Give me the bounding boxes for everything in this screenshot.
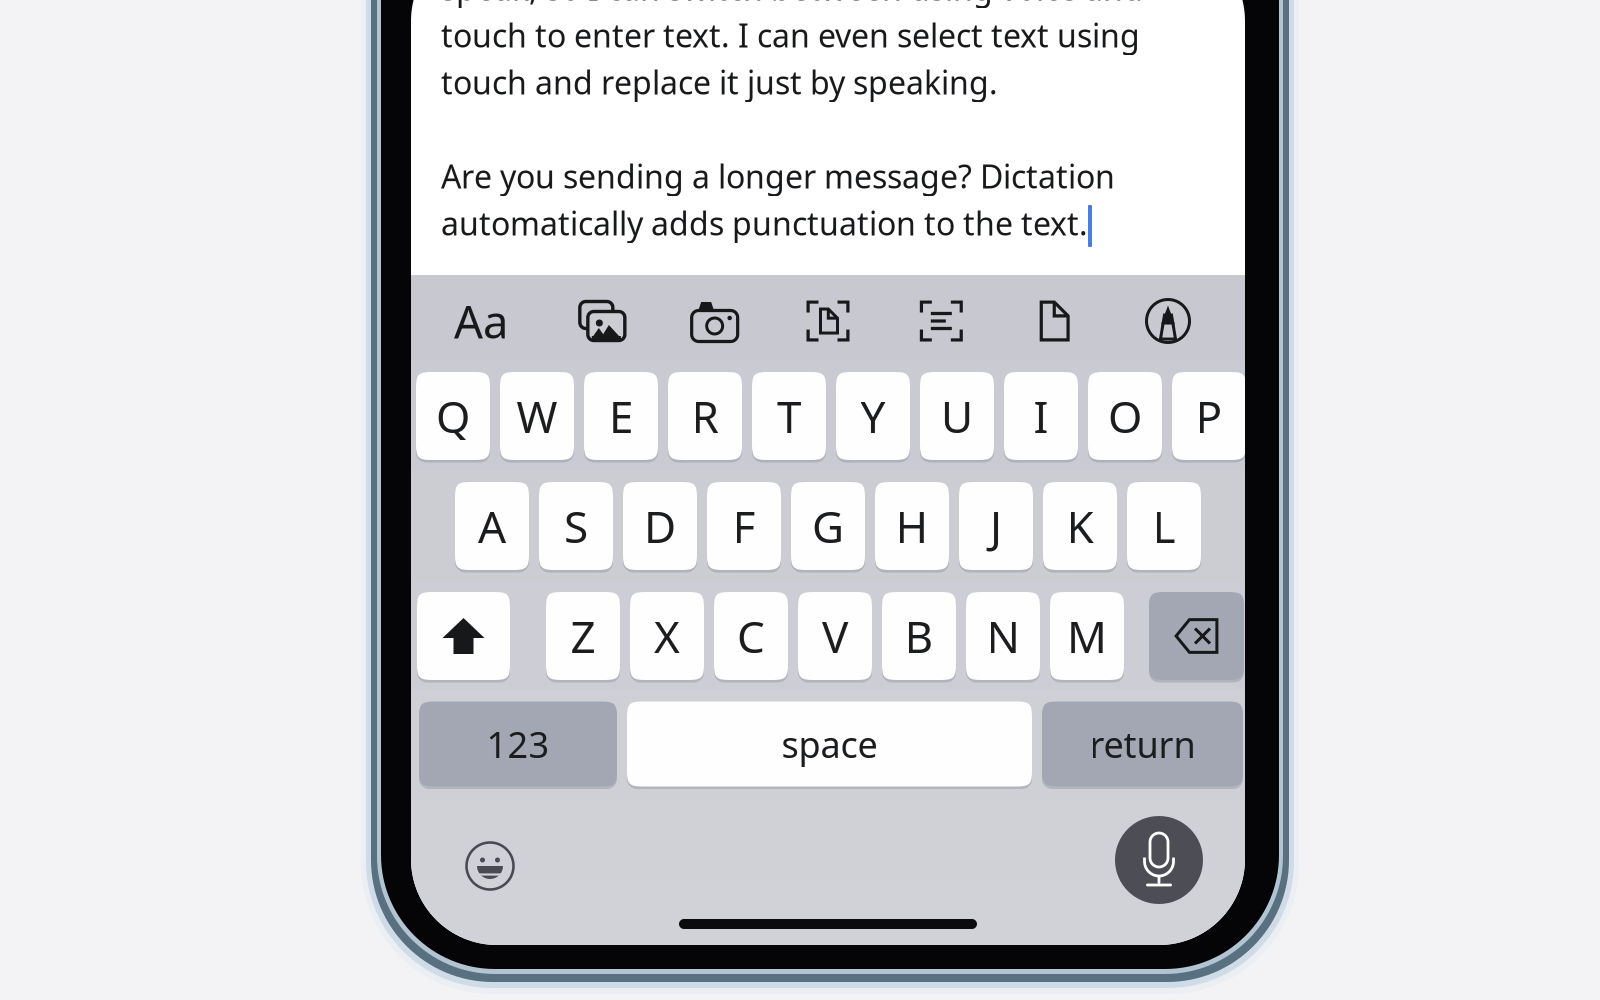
button[interactable]: Camera — [686, 296, 744, 346]
button[interactable]: R — [668, 370, 742, 461]
button[interactable]: J — [959, 480, 1033, 571]
staticText: Z — [570, 607, 595, 665]
staticText: X — [654, 607, 680, 665]
staticText: J — [990, 497, 1002, 555]
button[interactable]: Attach File — [1026, 296, 1084, 346]
button[interactable]: Delete — [1149, 590, 1244, 681]
button[interactable]: H — [875, 480, 949, 571]
staticText: touch to enter text. I can even select t… — [441, 14, 1140, 56]
button[interactable]: S — [539, 480, 613, 571]
staticText: R — [691, 387, 718, 445]
staticText: F — [732, 497, 755, 555]
staticText: Q — [436, 387, 470, 445]
button[interactable]: Scan Document — [799, 296, 857, 346]
staticText: H — [895, 497, 928, 555]
button[interactable]: I — [1004, 370, 1078, 461]
staticText: touch and replace it just by speaking. — [441, 61, 998, 103]
button[interactable]: A — [455, 480, 529, 571]
button[interactable]: X — [630, 590, 704, 681]
staticText: W — [516, 387, 557, 445]
staticText: V — [822, 607, 848, 665]
button[interactable]: Q — [416, 370, 490, 461]
button[interactable]: Y — [836, 370, 910, 461]
staticText: A — [478, 497, 506, 555]
staticText: G — [812, 497, 844, 555]
button[interactable]: return — [1042, 700, 1243, 788]
staticText: Y — [860, 387, 885, 445]
staticText: K — [1066, 497, 1093, 555]
button[interactable]: Markup — [1139, 296, 1197, 346]
staticText: U — [941, 387, 973, 445]
staticText: L — [1152, 497, 1175, 555]
button[interactable]: B — [882, 590, 956, 681]
staticText: Are you sending a longer message? Dictat… — [441, 155, 1115, 197]
button[interactable]: G — [791, 480, 865, 571]
button[interactable]: Z — [546, 590, 620, 681]
button[interactable]: K — [1043, 480, 1117, 571]
button[interactable]: L — [1127, 480, 1201, 571]
button[interactable]: V — [798, 590, 872, 681]
staticText: C — [737, 607, 765, 665]
button[interactable]: Shift — [417, 590, 510, 681]
button[interactable]: Scan Text — [912, 296, 970, 346]
staticText: speak, so I can switch between using voi… — [441, 0, 1143, 9]
button[interactable]: Text Formatting — [445, 290, 517, 352]
staticText: O — [1108, 387, 1142, 445]
staticText: 123 — [486, 720, 549, 768]
button[interactable]: Photos — [572, 296, 630, 346]
button[interactable]: M — [1050, 590, 1124, 681]
staticText: D — [644, 497, 676, 555]
staticText: P — [1195, 387, 1222, 445]
button[interactable]: T — [752, 370, 826, 461]
staticText: S — [564, 497, 588, 555]
button[interactable]: Emoji — [464, 840, 516, 892]
button[interactable]: W — [500, 370, 574, 461]
button[interactable]: F — [707, 480, 781, 571]
button[interactable]: U — [920, 370, 994, 461]
button[interactable]: P — [1172, 370, 1246, 461]
staticText: I — [1033, 387, 1048, 445]
button[interactable]: O — [1088, 370, 1162, 461]
staticText: E — [609, 387, 633, 445]
staticText: return — [1089, 720, 1195, 768]
staticText: M — [1067, 607, 1107, 665]
button[interactable]: E — [584, 370, 658, 461]
staticText: automatically adds punctuation to the te… — [441, 202, 1088, 244]
button[interactable]: Dictation — [1115, 816, 1203, 904]
staticText: N — [986, 607, 1019, 665]
button[interactable]: space — [627, 700, 1032, 788]
button[interactable]: 123 — [419, 700, 617, 788]
staticText: B — [904, 607, 933, 665]
button[interactable]: D — [623, 480, 697, 571]
button[interactable]: C — [714, 590, 788, 681]
staticText: Aa — [454, 291, 508, 351]
staticText: T — [777, 387, 801, 445]
button[interactable]: N — [966, 590, 1040, 681]
staticText: space — [781, 720, 877, 768]
